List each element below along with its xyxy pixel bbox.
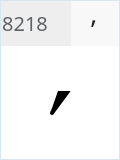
button[interactable]: More options: [71, 1, 119, 46]
staticText: 8218: [2, 10, 48, 37]
button[interactable]: Quote mark: [1, 46, 119, 159]
staticText: ,: [90, 0, 98, 31]
button[interactable]: 8218: [1, 1, 71, 46]
